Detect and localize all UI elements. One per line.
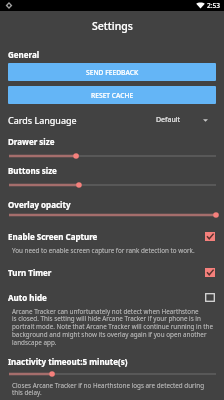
staticText: 2:53 (207, 1, 220, 10)
staticText: Drawer size (8, 136, 55, 147)
button[interactable]: Slider (0, 150, 224, 162)
other: Auto hide (202, 290, 217, 305)
staticText: General (8, 49, 40, 60)
button[interactable]: Enable Screen Capture (0, 229, 224, 244)
button[interactable]: RESET CACHE (8, 86, 216, 104)
button[interactable]: Slider (0, 179, 224, 191)
button[interactable]: Slider (0, 368, 224, 380)
other: Enable Screen Capture (202, 229, 217, 244)
staticText: Settings (92, 19, 133, 33)
staticText: Auto hide (8, 292, 47, 303)
staticText: SEND FEEDBACK (86, 68, 139, 77)
other: Turn Timer (202, 265, 217, 280)
button[interactable]: Slider (0, 209, 224, 221)
staticText: Cards Language (8, 114, 77, 126)
staticText: Inactivity timeout:5 minute(s) (8, 356, 128, 367)
button[interactable]: Cards Language (0, 109, 224, 131)
staticText: Turn Timer (8, 267, 52, 278)
staticText: Overlay opacity (8, 199, 71, 210)
staticText: You need to enable screen capture for ra… (12, 246, 195, 255)
button[interactable]: Turn Timer (0, 265, 224, 280)
button[interactable]: SEND FEEDBACK (8, 63, 216, 81)
staticText: Default (156, 115, 181, 125)
button[interactable]: Auto hide (0, 290, 224, 305)
staticText: Enable Screen Capture (8, 231, 98, 242)
staticText: RESET CACHE (91, 91, 134, 100)
staticText: Buttons size (8, 165, 57, 176)
staticText: Arcane Tracker can unfortunately not det… (12, 307, 213, 347)
staticText: Closes Arcane Tracker if no Hearthstone … (12, 381, 205, 397)
